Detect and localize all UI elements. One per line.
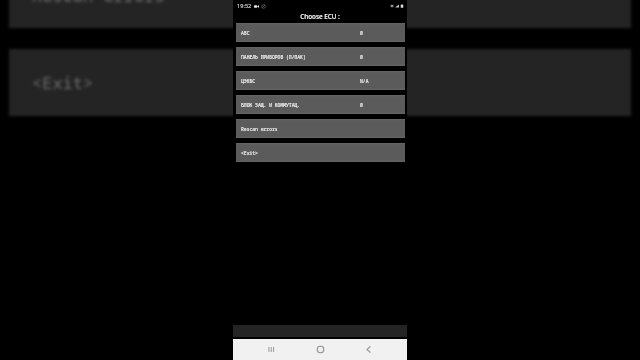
staticText: 0 (360, 102, 363, 108)
staticText: ЦЭКБС (241, 78, 256, 84)
staticText: 0 (360, 30, 363, 36)
button[interactable]: Home (310, 339, 331, 360)
button[interactable]: Back (358, 339, 379, 360)
staticText: Rescan errors (32, 0, 165, 7)
button[interactable]: Rescan errors (236, 119, 405, 138)
staticText: 0 (360, 54, 363, 60)
staticText: N/A (360, 78, 369, 84)
staticText: БЛОК ЗАЩ. И КОММУТАЦ. (241, 102, 301, 108)
button[interactable]: ЦЭКБС (236, 71, 405, 90)
staticText: ABC (241, 30, 250, 36)
staticText: Rescan errors (241, 126, 278, 132)
staticText: <Exit> (241, 150, 258, 156)
staticText: <Exit> (32, 71, 94, 94)
button[interactable]: Recent apps (261, 339, 282, 360)
staticText: 19:52 (237, 2, 252, 10)
button[interactable]: <Exit> (236, 143, 405, 162)
staticText: ПАНЕЛЬ ПРИБОРОВ (П/ПАК) (241, 54, 306, 60)
staticText: Choose ECU : (233, 12, 407, 21)
button[interactable]: ПАНЕЛЬ ПРИБОРОВ (П/ПАК) (236, 47, 405, 66)
button[interactable]: БЛОК ЗАЩ. И КОММУТАЦ. (236, 95, 405, 114)
button[interactable]: ABC (236, 23, 405, 42)
